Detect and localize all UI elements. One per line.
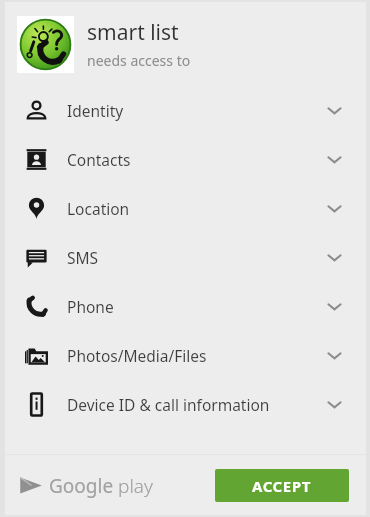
other: Google Play <box>17 472 44 499</box>
staticText: Photos/Media/Files <box>67 345 207 366</box>
button[interactable]: Identity <box>5 86 366 135</box>
button[interactable]: SMS <box>5 233 366 282</box>
staticText: play <box>118 473 153 499</box>
button[interactable]: Phone <box>5 282 366 331</box>
staticText: needs access to <box>87 51 191 70</box>
button[interactable]: Device ID & call information <box>5 380 366 429</box>
staticText: smart list <box>87 18 179 47</box>
staticText: Identity <box>67 100 124 121</box>
staticText: Device ID & call information <box>67 394 270 415</box>
button[interactable]: Google Play <box>17 472 153 499</box>
staticText: ACCEPT <box>252 476 312 496</box>
button[interactable]: Photos/Media/Files <box>5 331 366 380</box>
staticText: Google <box>49 473 114 499</box>
button[interactable]: Contacts <box>5 135 366 184</box>
staticText: Contacts <box>67 149 131 170</box>
staticText: Location <box>67 198 130 219</box>
staticText: SMS <box>67 247 99 268</box>
button[interactable]: Location <box>5 184 366 233</box>
button[interactable]: ACCEPT <box>215 469 349 502</box>
staticText: Phone <box>67 296 114 317</box>
